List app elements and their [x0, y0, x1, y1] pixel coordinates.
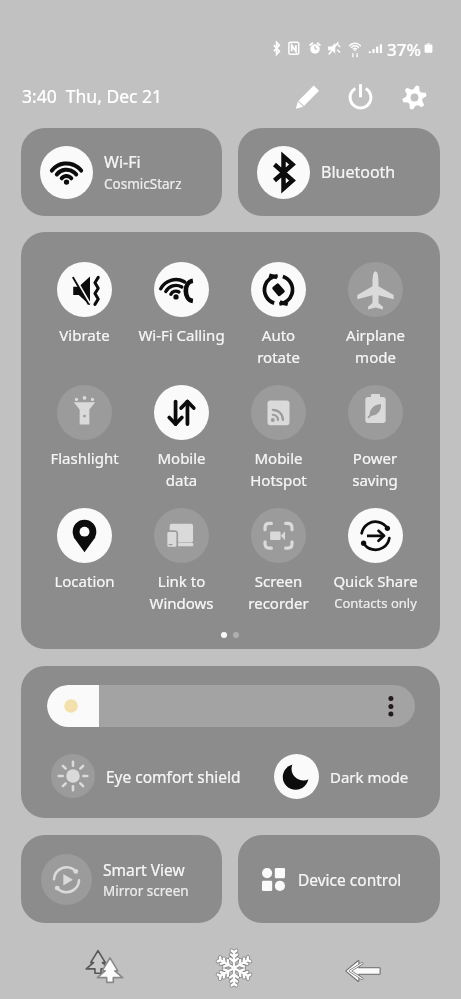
staticText: Device control [298, 869, 402, 890]
button[interactable]: Settings [400, 83, 429, 112]
staticText: Dark mode [330, 767, 409, 787]
button[interactable]: Smart View [21, 835, 222, 923]
button[interactable]: Wi-Fi [21, 128, 222, 216]
staticText: Mirror screen [103, 882, 189, 900]
staticText: Airplane mode [346, 325, 405, 367]
button[interactable]: Home [210, 944, 258, 992]
staticText: Eye comfort shield [106, 766, 241, 787]
button[interactable]: Recents [80, 942, 128, 990]
button[interactable]: Power [346, 83, 375, 112]
staticText: 37% [387, 38, 421, 61]
button[interactable] [47, 685, 415, 727]
button[interactable]: Power saving [327, 385, 423, 490]
button[interactable]: Mobile data [133, 385, 229, 490]
button[interactable]: Flashlight [36, 385, 132, 468]
staticText: Wi-Fi [104, 151, 141, 173]
button[interactable]: Bluetooth [238, 128, 440, 216]
staticText: Power saving [352, 448, 398, 490]
staticText: Quick Share [333, 571, 418, 591]
button[interactable]: Edit [293, 83, 321, 111]
staticText: Link to Windows [149, 571, 214, 613]
button[interactable]: Mobile Hotspot [230, 385, 326, 490]
staticText: Wi-Fi Calling [138, 325, 225, 345]
staticText: 3:40 Thu, Dec 21 [22, 84, 163, 108]
staticText: Bluetooth [321, 161, 396, 183]
staticText: Auto rotate [257, 325, 300, 367]
staticText: Vibrate [59, 325, 110, 345]
button[interactable]: Quick Share [327, 508, 423, 612]
button[interactable]: Eye comfort shield [51, 754, 266, 798]
button[interactable]: Wi-Fi Calling [133, 262, 229, 345]
button[interactable]: Vibrate [36, 262, 132, 345]
staticText: Mobile Hotspot [250, 448, 307, 490]
button[interactable]: Link to Windows [133, 508, 229, 613]
button[interactable]: Location [36, 508, 132, 591]
button[interactable]: Screen recorder [230, 508, 326, 613]
button[interactable]: Device control [238, 835, 440, 923]
button[interactable]: Airplane mode [327, 262, 423, 367]
staticText: Mobile data [157, 448, 206, 490]
staticText: Contacts only [334, 594, 417, 612]
staticText: Location [54, 571, 115, 591]
button[interactable]: Auto rotate [230, 262, 326, 367]
staticText: Flashlight [50, 448, 119, 468]
staticText: Screen recorder [248, 571, 309, 613]
button[interactable]: Dark mode [274, 754, 434, 799]
staticText: Smart View [103, 859, 185, 880]
button[interactable]: Back [339, 947, 387, 995]
staticText: CosmicStarz [104, 175, 182, 193]
